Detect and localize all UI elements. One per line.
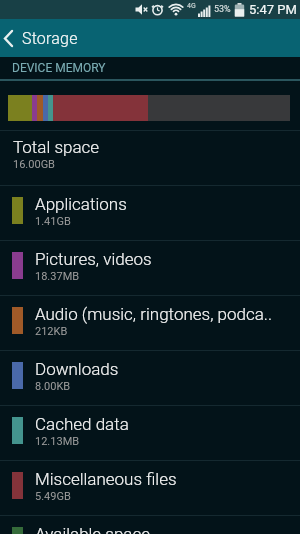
button[interactable]: Available space	[0, 516, 300, 534]
staticText: Applications	[35, 194, 127, 214]
staticText: 16.00GB	[13, 158, 55, 171]
button[interactable]: Miscellaneous files	[0, 461, 300, 515]
button[interactable]: Applications	[0, 186, 300, 240]
staticText: 8.00KB	[35, 380, 71, 393]
staticText: Cached data	[35, 414, 129, 434]
staticText: 1.41GB	[35, 215, 71, 228]
staticText: Available space	[35, 524, 151, 534]
staticText: 18.37MB	[35, 270, 80, 283]
staticText: 12.13MB	[35, 435, 80, 448]
button[interactable]: Storage	[0, 19, 300, 57]
button[interactable]: Pictures, videos	[0, 241, 300, 295]
staticText: Pictures, videos	[35, 249, 152, 269]
staticText: Downloads	[35, 359, 119, 379]
button[interactable]: Downloads	[0, 351, 300, 405]
button[interactable]: Total space	[0, 131, 300, 185]
staticText: 212KB	[35, 325, 68, 338]
staticText: 5:47 PM	[249, 2, 297, 17]
staticText: Total space	[13, 137, 100, 157]
staticText: 5.49GB	[35, 490, 71, 503]
staticText: Audio (music, ringtones, podca..	[35, 304, 272, 324]
staticText: 4G	[187, 2, 196, 10]
staticText: 53%	[214, 4, 231, 15]
staticText: DEVICE MEMORY	[12, 61, 106, 75]
staticText: Miscellaneous files	[35, 469, 177, 489]
button[interactable]: Cached data	[0, 406, 300, 460]
button[interactable]: Audio (music, ringtones, podca..	[0, 296, 300, 350]
staticText: Storage	[22, 29, 78, 48]
